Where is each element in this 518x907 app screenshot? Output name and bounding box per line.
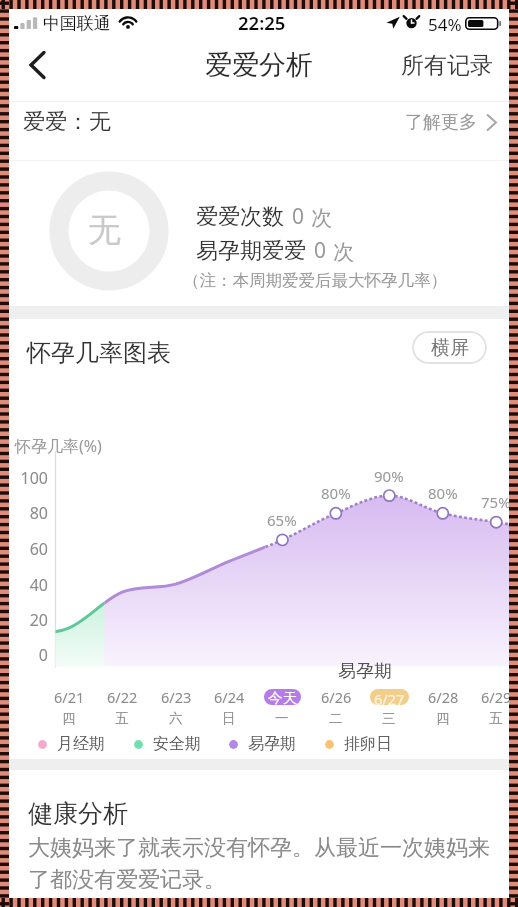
staticText: 横屏 <box>431 336 469 360</box>
staticText: 54% <box>428 13 462 36</box>
staticText: 80% <box>428 483 458 503</box>
staticText: 一 <box>275 710 289 727</box>
staticText: 次 <box>333 239 354 265</box>
staticText: 日 <box>222 710 236 727</box>
staticText: 四 <box>436 710 450 727</box>
staticText: 易孕期 <box>338 660 392 683</box>
staticText: 次 <box>311 205 332 231</box>
staticText: 65% <box>267 510 297 530</box>
staticText: 今天 <box>268 689 297 705</box>
staticText: 75% <box>481 492 511 512</box>
staticText: 爱爱分析 <box>205 48 313 82</box>
staticText: 22:25 <box>238 10 286 35</box>
staticText: 6/26 <box>321 687 352 707</box>
staticText: 爱爱：无 <box>23 108 111 136</box>
staticText: 6/29 <box>481 687 512 707</box>
staticText: 6/24 <box>214 687 245 707</box>
staticText: 6/27 <box>374 689 405 705</box>
staticText: 20 <box>29 609 48 631</box>
staticText: 易孕期爱爱 <box>196 237 306 265</box>
staticText: 100 <box>20 467 48 489</box>
staticText: 五 <box>115 710 129 727</box>
staticText: 了解更多 <box>405 111 477 134</box>
staticText: 6/21 <box>54 687 85 707</box>
button[interactable]: Back <box>9 38 65 92</box>
staticText: 所有记录 <box>401 51 493 80</box>
staticText: 五 <box>489 710 503 727</box>
staticText: 大姨妈来了就表示没有怀孕。从最近一次姨妈来了都没有爱爱记录。 <box>28 834 501 893</box>
staticText: 0 <box>38 644 48 666</box>
staticText: 易孕期 <box>248 734 296 754</box>
staticText: 六 <box>169 710 183 727</box>
button[interactable]: 横屏 <box>412 331 487 364</box>
staticText: 60 <box>29 538 48 560</box>
staticText: 怀孕几率(%) <box>15 435 102 457</box>
staticText: 月经期 <box>57 734 105 754</box>
staticText: 排卵日 <box>344 734 392 754</box>
staticText: 0 <box>314 236 327 265</box>
staticText: 二 <box>329 710 343 727</box>
staticText: 90% <box>374 466 404 486</box>
staticText: 无 <box>88 209 121 251</box>
staticText: 爱爱次数 <box>196 203 284 231</box>
staticText: 80% <box>321 483 351 503</box>
staticText: 三 <box>382 710 396 727</box>
staticText: 怀孕几率图表 <box>27 338 171 368</box>
button[interactable]: 爱爱：无 <box>9 93 509 151</box>
button[interactable]: 所有记录 <box>393 41 501 90</box>
staticText: 中国联通 <box>43 13 111 34</box>
staticText: 80 <box>29 502 48 524</box>
staticText: 6/22 <box>107 687 138 707</box>
staticText: 6/28 <box>428 687 459 707</box>
staticText: 健康分析 <box>28 798 128 829</box>
staticText: 40 <box>29 574 48 596</box>
staticText: 四 <box>62 710 76 727</box>
staticText: 0 <box>292 202 305 231</box>
staticText: （注：本周期爱爱后最大怀孕几率） <box>183 270 447 291</box>
staticText: 安全期 <box>153 734 201 754</box>
staticText: 6/23 <box>161 687 192 707</box>
